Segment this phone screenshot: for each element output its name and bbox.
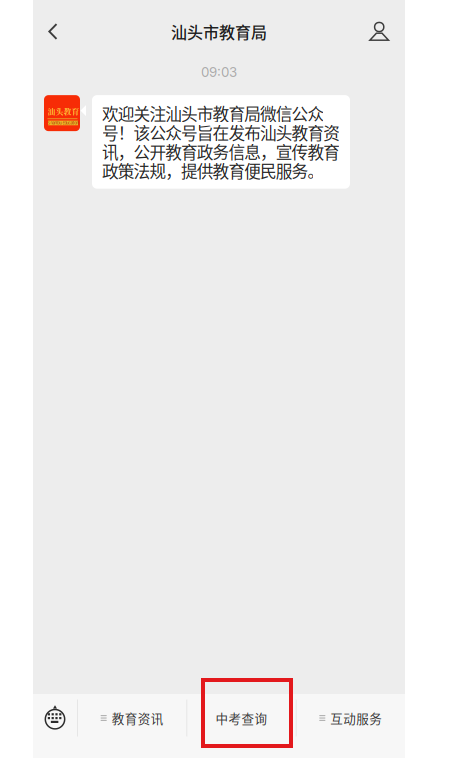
button[interactable]: Keyboard [33,694,77,742]
button[interactable]: 教育资讯 [78,694,186,742]
staticText: 互动服务 [330,709,382,727]
button[interactable]: Back [38,13,68,50]
button[interactable]: 中考查询 [187,694,296,742]
staticText: 教育资讯 [112,709,164,727]
staticText: 09:03 [201,64,237,80]
staticText: 汕头教育 [47,106,79,117]
staticText: Shantou Education [47,120,78,125]
staticText: 中考查询 [215,709,267,727]
button[interactable]: Contact info [359,13,400,50]
button[interactable]: 互动服务 [297,694,405,742]
staticText: 欢迎关注汕头市教育局微信公众号！该公众号旨在发布汕头教育资讯，公开教育政务信息，… [102,101,340,183]
staticText: 汕头市教育局 [171,20,267,43]
